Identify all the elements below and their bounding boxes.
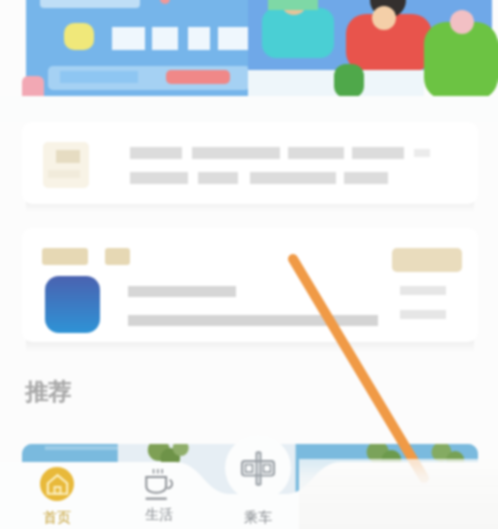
button[interactable] xyxy=(22,122,478,204)
button[interactable]: 首页 xyxy=(22,463,92,529)
staticText: 乘车 xyxy=(244,509,272,527)
button[interactable] xyxy=(26,0,264,97)
button[interactable] xyxy=(22,228,478,342)
staticText: 首页 xyxy=(43,509,71,527)
button[interactable]: 生活 xyxy=(124,463,194,529)
staticText: 生活 xyxy=(145,506,173,524)
button[interactable]: 乘车 xyxy=(223,437,293,529)
button[interactable] xyxy=(22,444,478,528)
staticText: 推荐 xyxy=(25,378,71,407)
